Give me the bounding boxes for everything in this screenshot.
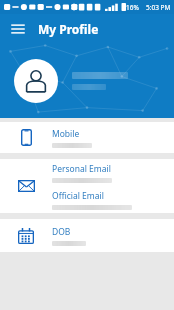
button[interactable]: Date of birth [0,219,174,252]
other: Email [18,180,35,192]
button[interactable]: Open navigation menu [8,19,28,39]
staticText: Personal Email [52,163,111,175]
staticText: Official Email [52,190,104,202]
button[interactable]: Mobile phone [0,122,174,153]
staticText: 5:03 PM [146,3,171,12]
staticText: 16% [126,3,139,12]
staticText: DOB [52,226,71,238]
other: Date of birth [18,228,34,244]
staticText: Mobile [52,128,80,140]
other: Mobile phone [21,129,32,146]
staticText: My Profile [38,21,99,37]
button[interactable]: Email [0,159,174,213]
